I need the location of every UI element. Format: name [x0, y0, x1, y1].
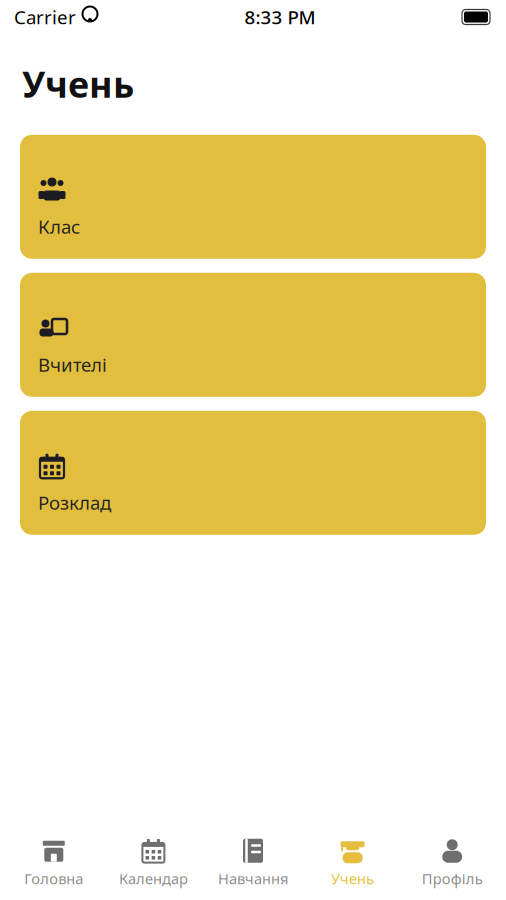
- staticText: Профіль: [422, 869, 483, 888]
- staticText: Головна: [24, 869, 83, 888]
- button[interactable]: Учень: [303, 830, 402, 898]
- staticText: Розклад: [38, 490, 111, 515]
- staticText: 8:33 PM: [244, 5, 315, 29]
- button[interactable]: Профіль: [402, 830, 502, 898]
- staticText: Учень: [331, 869, 374, 888]
- button[interactable]: Клас: [20, 135, 486, 259]
- staticText: Вчителі: [38, 352, 107, 377]
- staticText: Клас: [38, 214, 80, 239]
- staticText: Календар: [119, 869, 188, 888]
- button[interactable]: Головна: [4, 830, 104, 898]
- staticText: Навчання: [218, 869, 288, 888]
- button[interactable]: Навчання: [203, 830, 303, 898]
- staticText: Учень: [22, 60, 134, 108]
- button[interactable]: Розклад: [20, 411, 486, 535]
- staticText: Carrier: [14, 5, 76, 29]
- button[interactable]: Вчителі: [20, 273, 486, 397]
- button[interactable]: Календар: [104, 830, 203, 898]
